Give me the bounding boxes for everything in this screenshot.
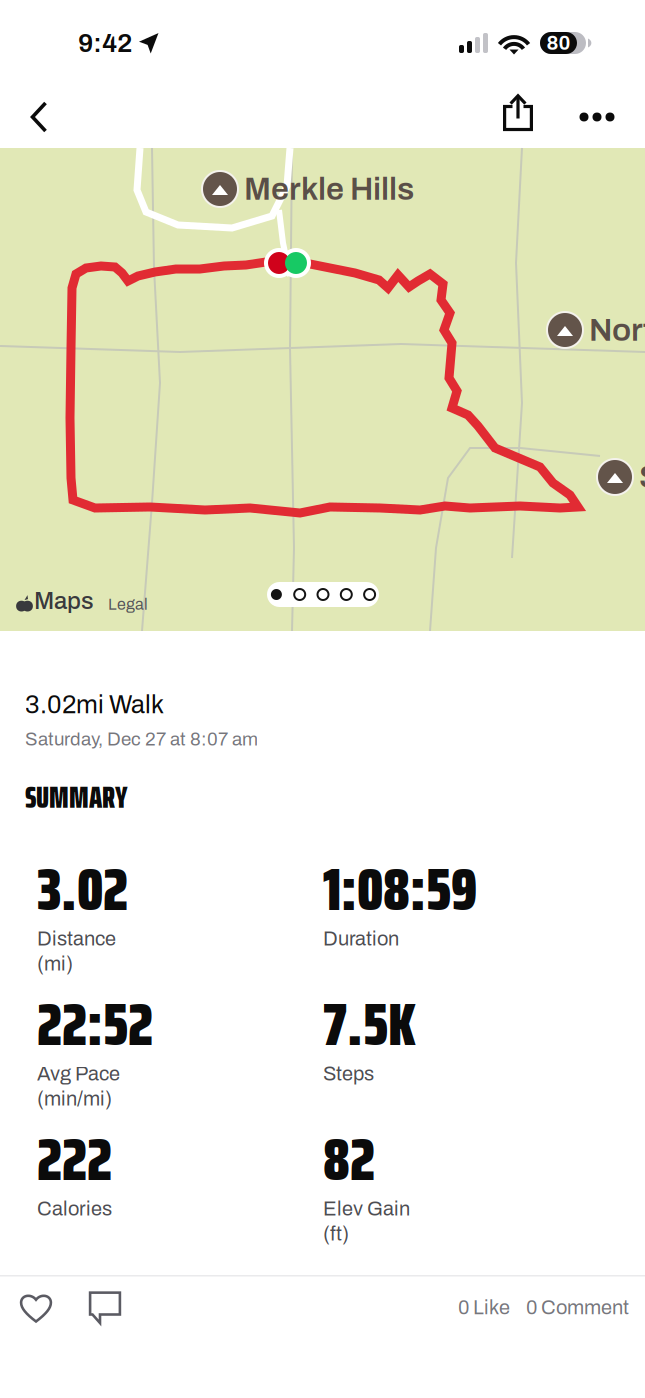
staticText: (ft) [323,1223,349,1245]
staticText: 80 [546,32,570,54]
staticText: 3.02 [37,842,128,936]
button[interactable]: Like [0,1276,72,1338]
staticText: Elev Gain [323,1198,410,1220]
staticText: 3.02mi Walk [25,691,164,719]
staticText: 22:52 [37,977,153,1071]
staticText: SUMMARY [25,773,128,821]
staticText: 7.5K [323,977,416,1071]
staticText: 1:08:59 [323,842,477,936]
staticText: Calories [37,1198,112,1220]
staticText: 0 Like [458,1297,510,1318]
staticText: Merkle Hills [244,172,414,206]
button[interactable]: 0 Like [458,1276,510,1338]
staticText: (mi) [37,953,73,975]
button[interactable]: Share [496,86,558,148]
staticText: Legal [108,596,148,613]
staticText: (min/mi) [37,1088,112,1110]
staticText: Nort [589,313,645,347]
button[interactable]: 0 Comment [510,1276,629,1338]
button[interactable]: Comment [72,1276,138,1338]
staticText: 82 [323,1112,375,1206]
staticText: Avg Pace [37,1063,120,1085]
button[interactable]: Back [16,86,62,148]
staticText: 9:42 [78,28,132,57]
staticText: Steps [323,1063,374,1085]
staticText: Duration [323,928,399,950]
staticText: Maps [34,588,94,614]
button[interactable]: More options [558,86,636,148]
staticText: Saturday, Dec 27 at 8:07 am [25,729,258,749]
staticText: 0 Comment [526,1297,629,1318]
staticText: 222 [37,1112,112,1206]
staticText: Distance [37,928,116,950]
staticText: S [639,460,645,494]
